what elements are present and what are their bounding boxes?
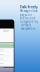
staticText: Messages that stay yours — [19, 9, 37, 16]
staticText: default, everywhere — [21, 23, 36, 31]
staticText: Talk freely — [19, 4, 37, 9]
staticText: End-to-end encrypted by — [19, 16, 37, 23]
